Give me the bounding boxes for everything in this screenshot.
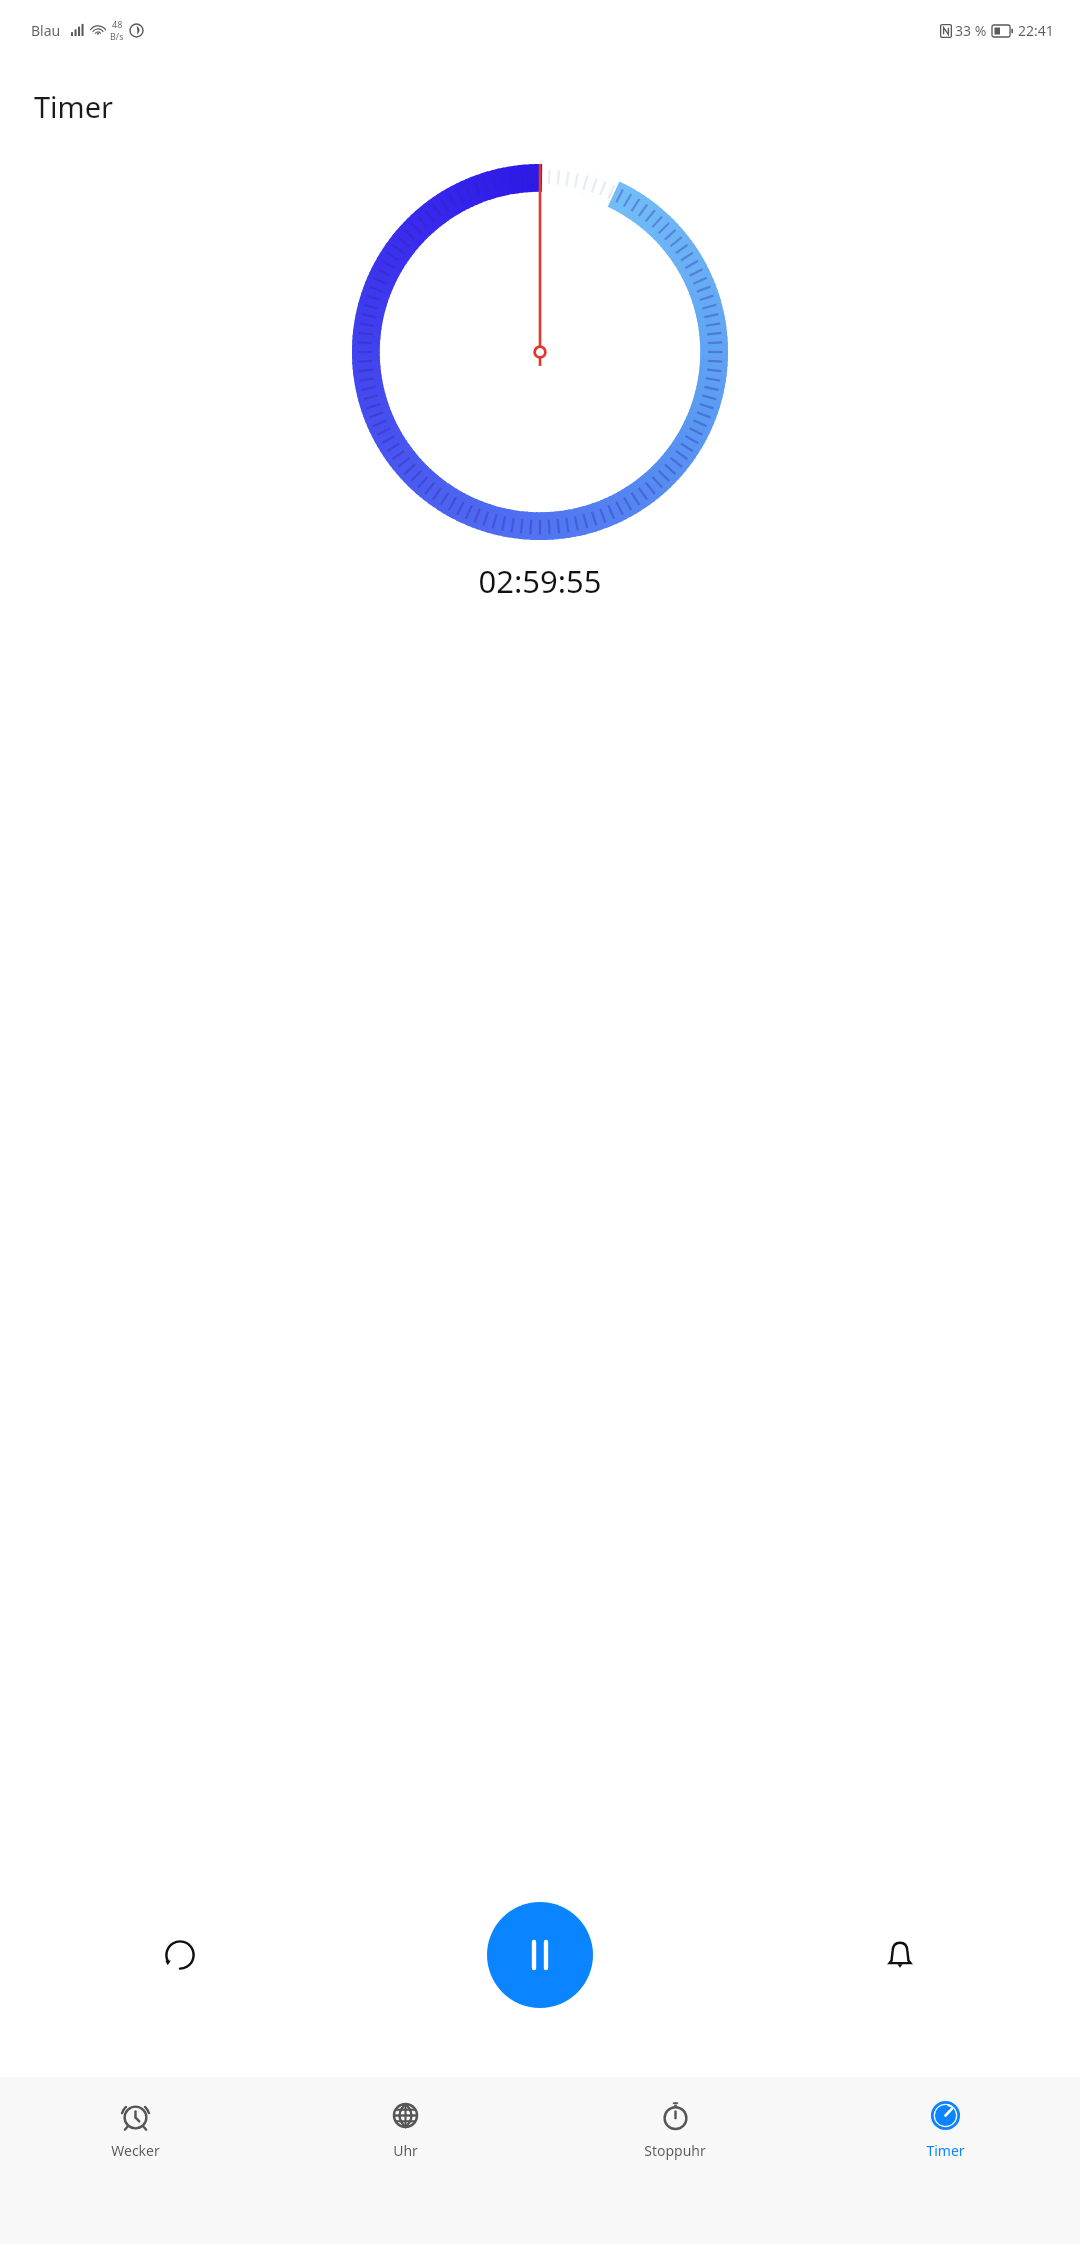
staticText: 22:41 bbox=[1018, 21, 1054, 40]
button[interactable]: Stoppuhr bbox=[540, 2077, 810, 2244]
staticText: Timer bbox=[34, 87, 114, 126]
staticText: Blau bbox=[31, 21, 61, 40]
button[interactable]: Klingelton bbox=[868, 1923, 932, 1987]
button[interactable]: Pause bbox=[487, 1902, 593, 2008]
staticText: Timer bbox=[926, 2141, 965, 2160]
staticText: Stoppuhr bbox=[644, 2141, 706, 2160]
staticText: 48 bbox=[112, 18, 123, 30]
button[interactable]: Uhr bbox=[270, 2077, 540, 2244]
button[interactable]: Wecker bbox=[0, 2077, 270, 2244]
staticText: Uhr bbox=[393, 2141, 418, 2160]
staticText: Wecker bbox=[111, 2141, 160, 2160]
button[interactable]: Zurücksetzen bbox=[148, 1923, 212, 1987]
button[interactable]: Timer bbox=[810, 2077, 1080, 2244]
staticText: B/s bbox=[110, 30, 124, 42]
staticText: 02:59:55 bbox=[478, 560, 602, 602]
staticText: 33 % bbox=[955, 21, 987, 40]
